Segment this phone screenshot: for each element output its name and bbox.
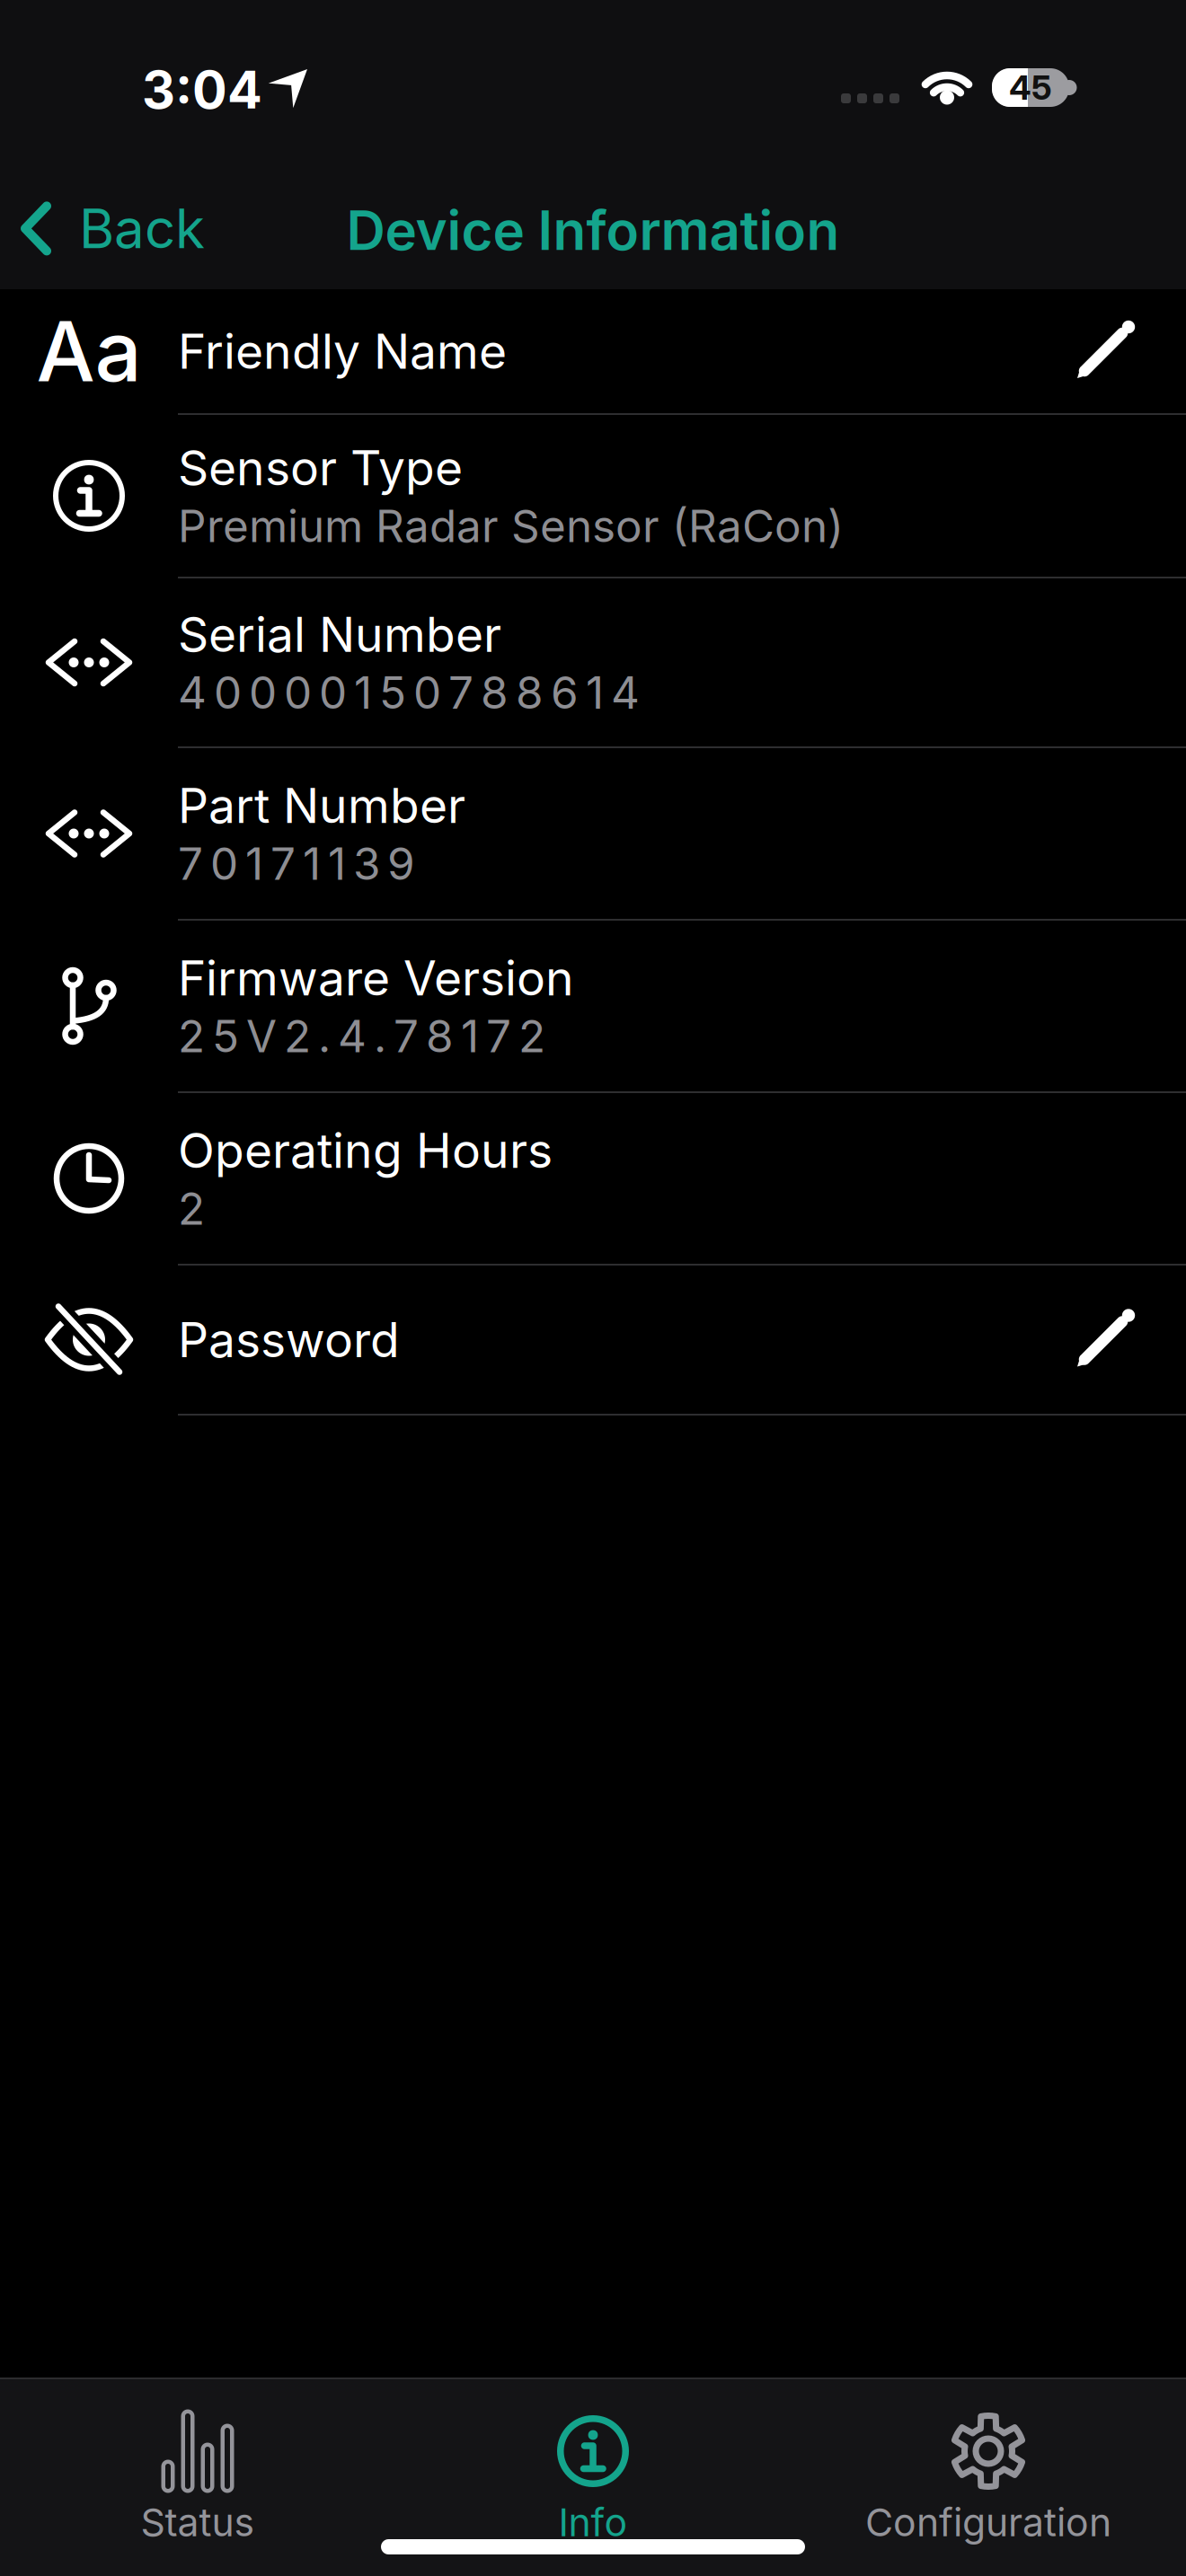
staticText: Configuration: [865, 2500, 1111, 2545]
staticText: Back: [79, 197, 205, 260]
staticText: 2 5 V 2 . 4 . 7 8 1 7 2: [178, 1010, 545, 1062]
button[interactable]: Edit Password: [0, 1266, 1186, 1414]
staticText: Friendly Name: [178, 323, 507, 379]
staticText: 45: [1009, 68, 1052, 107]
staticText: Status: [141, 2500, 255, 2545]
button[interactable]: Back: [19, 197, 205, 260]
staticText: 3:04: [142, 59, 262, 120]
staticText: Operating Hours: [178, 1122, 553, 1179]
button[interactable]: Edit Friendly Name: [0, 289, 1186, 413]
staticText: Part Number: [178, 777, 465, 834]
button[interactable]: Info: [395, 2379, 791, 2576]
staticText: Device Information: [346, 198, 840, 262]
staticText: Sensor Type: [178, 440, 463, 496]
button[interactable]: Configuration: [791, 2379, 1186, 2576]
staticText: Info: [558, 2500, 628, 2545]
staticText: 4 0 0 0 0 1 5 0 7 8 8 6 1 4: [178, 666, 640, 719]
staticText: Serial Number: [178, 606, 501, 663]
staticText: Password: [178, 1311, 400, 1368]
staticText: Premium Radar Sensor (RaCon): [178, 500, 844, 552]
staticText: 2: [178, 1182, 205, 1235]
staticText: 7 0 1 7 1 1 3 9: [178, 837, 415, 890]
button[interactable]: Status: [0, 2379, 395, 2576]
staticText: Firmware Version: [178, 950, 574, 1006]
staticText: Aa: [36, 302, 142, 400]
